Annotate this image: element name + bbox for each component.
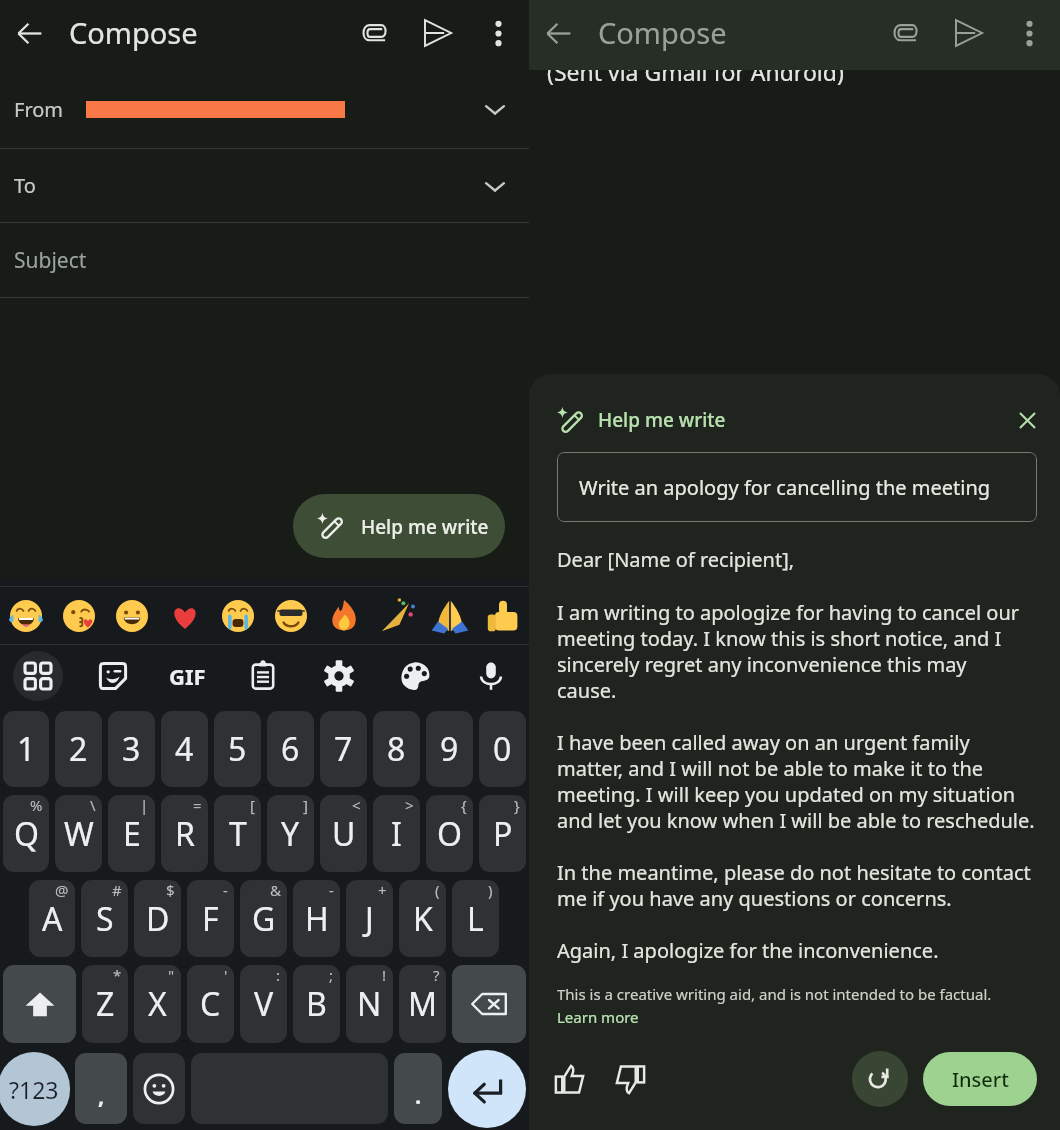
button[interactable]: Write an apology for cancelling the meet…: [557, 452, 1037, 522]
button[interactable]: Send: [414, 10, 460, 56]
button[interactable]: Learn more: [557, 1007, 639, 1027]
button[interactable]: Emoji suggestion: [105, 587, 158, 644]
button[interactable]: Voice input: [453, 645, 529, 707]
button[interactable]: Emoji suggestion: [476, 587, 529, 644]
button[interactable]: Backspace: [452, 965, 526, 1043]
staticText: N: [357, 982, 382, 1026]
button[interactable]: Emoji suggestion: [52, 587, 105, 644]
staticText: [: [250, 795, 255, 815]
staticText: (: [435, 880, 440, 900]
staticText: 4: [175, 727, 194, 771]
staticText: K: [413, 897, 433, 941]
button[interactable]: Emoji: [133, 1053, 185, 1124]
button[interactable]: G: [240, 880, 287, 957]
button[interactable]: .: [394, 1053, 442, 1124]
button[interactable]: More options: [1007, 11, 1051, 55]
button[interactable]: I: [373, 795, 420, 872]
button[interactable]: Back: [6, 10, 52, 56]
button[interactable]: 7: [320, 711, 367, 787]
button[interactable]: P: [479, 795, 526, 872]
button[interactable]: 3: [108, 711, 155, 787]
button[interactable]: Shift: [3, 965, 76, 1043]
button[interactable]: W: [55, 795, 102, 872]
button[interactable]: M: [399, 965, 446, 1043]
button[interactable]: S: [81, 880, 128, 957]
button[interactable]: Emoji suggestion: [370, 587, 423, 644]
button[interactable]: Settings: [301, 645, 377, 707]
button[interactable]: 5: [214, 711, 261, 787]
button[interactable]: Recreate: [852, 1051, 908, 1107]
button[interactable]: Clipboard: [225, 645, 301, 707]
staticText: F: [202, 897, 219, 941]
button[interactable]: H: [293, 880, 340, 957]
staticText: 5: [228, 727, 247, 771]
staticText: ?123: [9, 1074, 59, 1105]
staticText: =: [193, 795, 202, 815]
button[interactable]: N: [346, 965, 393, 1043]
button[interactable]: Back: [535, 10, 581, 56]
staticText: Help me write: [598, 407, 726, 433]
button[interactable]: R: [161, 795, 208, 872]
staticText: W: [64, 812, 94, 856]
button[interactable]: J: [346, 880, 393, 957]
button[interactable]: ?123: [0, 1052, 70, 1126]
button[interactable]: Emoji suggestion: [0, 587, 52, 644]
button[interactable]: Attach file: [352, 10, 398, 56]
button[interactable]: 1: [3, 711, 49, 787]
button[interactable]: V: [240, 965, 287, 1043]
button[interactable]: Stickers: [75, 645, 150, 707]
staticText: R: [175, 812, 195, 856]
staticText: U: [332, 812, 356, 856]
button[interactable]: 4: [161, 711, 208, 787]
staticText: 1: [17, 727, 36, 771]
button[interactable]: K: [399, 880, 446, 957]
button[interactable]: Y: [267, 795, 314, 872]
button[interactable]: Emoji suggestion: [158, 587, 211, 644]
button[interactable]: Emoji suggestion: [211, 587, 264, 644]
button[interactable]: 2: [55, 711, 102, 787]
button[interactable]: Emoji suggestion: [423, 587, 476, 644]
button[interactable]: Bad response: [602, 1051, 658, 1107]
staticText: +: [378, 880, 387, 900]
staticText: }: [514, 795, 520, 815]
button[interactable]: Keyboard modes: [13, 651, 63, 701]
button[interactable]: Send: [945, 10, 991, 56]
button[interactable]: Z: [82, 965, 128, 1043]
button[interactable]: Emoji suggestion: [317, 587, 370, 644]
button[interactable]: D: [134, 880, 181, 957]
button[interactable]: 0: [479, 711, 526, 787]
button[interactable]: X: [134, 965, 181, 1043]
button[interactable]: Attach file: [883, 10, 929, 56]
staticText: \: [90, 795, 96, 815]
staticText: A: [42, 897, 63, 941]
button[interactable]: A: [29, 880, 75, 957]
button[interactable]: ,: [75, 1053, 127, 1124]
staticText: :: [276, 965, 281, 985]
button[interactable]: O: [426, 795, 473, 872]
button[interactable]: GIF: [150, 645, 225, 707]
staticText: {: [461, 795, 467, 815]
button[interactable]: Themes: [377, 645, 453, 707]
button[interactable]: Close: [1006, 399, 1048, 441]
button[interactable]: Help me write: [293, 494, 505, 558]
staticText: From: [14, 96, 64, 123]
button[interactable]: E: [108, 795, 155, 872]
staticText: $: [166, 880, 175, 900]
button[interactable]: T: [214, 795, 261, 872]
button[interactable]: 9: [426, 711, 473, 787]
button[interactable]: Insert: [923, 1052, 1037, 1106]
button[interactable]: 6: [267, 711, 314, 787]
button[interactable]: 8: [373, 711, 420, 787]
button[interactable]: More options: [476, 11, 520, 55]
staticText: -: [223, 880, 228, 900]
button[interactable]: B: [293, 965, 340, 1043]
button[interactable]: Enter: [448, 1050, 526, 1128]
button[interactable]: Q: [3, 795, 49, 872]
button[interactable]: Emoji suggestion: [264, 587, 317, 644]
button[interactable]: C: [187, 965, 234, 1043]
button[interactable]: U: [320, 795, 367, 872]
button[interactable]: Good response: [541, 1051, 597, 1107]
button[interactable]: F: [187, 880, 234, 957]
button[interactable]: L: [452, 880, 499, 957]
